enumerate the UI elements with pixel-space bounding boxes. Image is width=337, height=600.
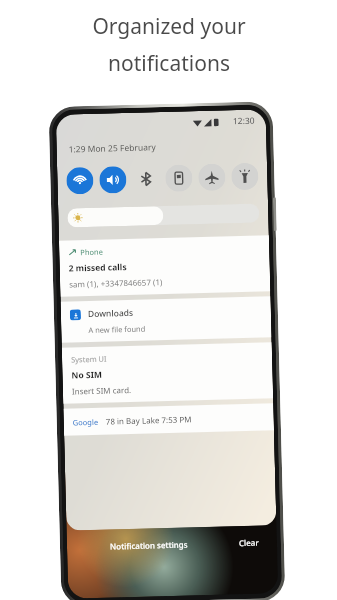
staticText: Downloads	[88, 307, 134, 320]
staticText: sam (1), +3347846657 (1)	[69, 276, 163, 290]
staticText: Organized your	[92, 12, 246, 41]
staticText: A new file found	[88, 324, 145, 335]
button[interactable]: Wi-Fi	[66, 167, 94, 195]
button[interactable]: Bluetooth	[132, 165, 160, 193]
button[interactable]: Phone	[59, 235, 270, 297]
button[interactable]: Airplane mode	[198, 163, 226, 191]
staticText: Clear	[239, 537, 259, 548]
button[interactable]: Flashlight	[231, 163, 259, 190]
button[interactable]: Clear	[226, 530, 272, 554]
staticText: System UI	[71, 354, 107, 364]
staticText: Google	[73, 417, 99, 427]
button[interactable]: Sound	[99, 166, 127, 194]
staticText: 78 in Bay Lake 7:53 PM	[106, 413, 192, 427]
button[interactable]: Notification settings	[72, 531, 226, 558]
button[interactable]: Google	[63, 403, 274, 436]
staticText: Phone	[80, 247, 103, 257]
staticText: 12:30	[233, 115, 255, 127]
button[interactable]: System UI	[62, 342, 273, 404]
staticText: Notification settings	[110, 538, 188, 551]
staticText: 1:29 Mon 25 February	[68, 141, 157, 155]
staticText: 2 missed calls	[68, 261, 127, 274]
staticText: No SIM	[71, 369, 103, 381]
button[interactable]: Downloads	[61, 296, 272, 343]
button[interactable]: Brightness	[67, 203, 259, 227]
staticText: notifications	[108, 49, 230, 78]
staticText: Insert SIM card.	[72, 384, 132, 396]
button[interactable]: Mobile data	[165, 164, 193, 192]
